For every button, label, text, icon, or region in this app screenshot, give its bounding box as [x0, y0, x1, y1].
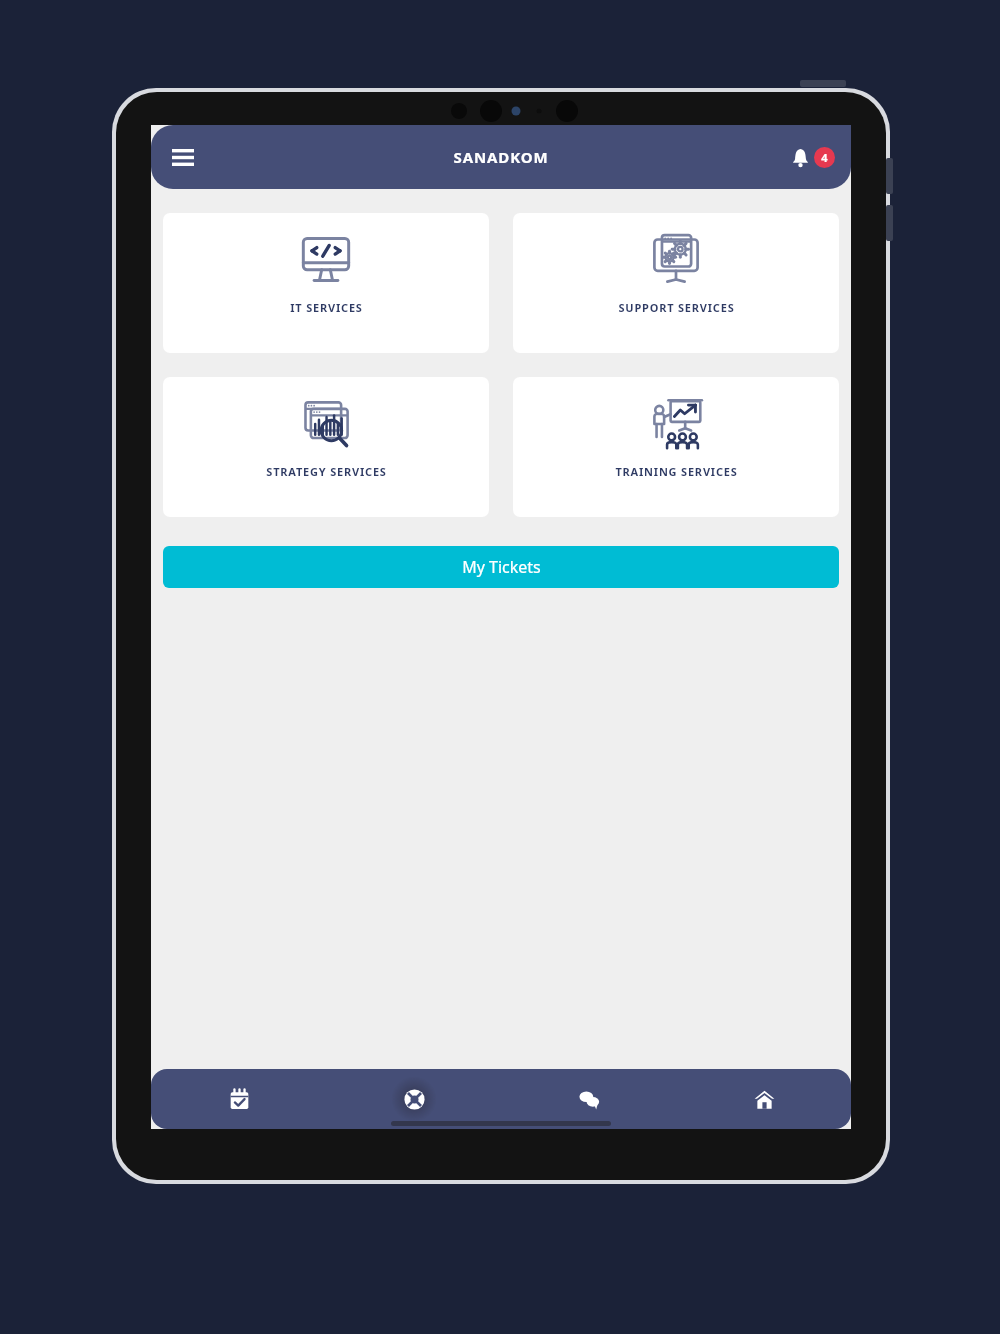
button[interactable]: Notifications	[788, 143, 839, 172]
button[interactable]: Support	[326, 1069, 501, 1129]
button[interactable]: Messages	[501, 1069, 676, 1129]
staticText: SANADKOM	[453, 147, 549, 167]
staticText: My Tickets	[462, 556, 541, 578]
button[interactable]: Menu	[159, 133, 207, 181]
staticText: STRATEGY SERVICES	[266, 464, 387, 479]
button[interactable]: STRATEGY SERVICES	[163, 377, 489, 517]
button[interactable]: My Tickets	[163, 546, 839, 588]
button[interactable]: SUPPORT SERVICES	[513, 213, 839, 353]
staticText: 4	[821, 150, 828, 165]
button[interactable]: TRAINING SERVICES	[513, 377, 839, 517]
button[interactable]: Home	[676, 1069, 851, 1129]
staticText: TRAINING SERVICES	[615, 464, 738, 479]
button[interactable]: IT SERVICES	[163, 213, 489, 353]
button[interactable]: Calendar	[151, 1069, 326, 1129]
staticText: IT SERVICES	[290, 300, 363, 315]
staticText: SUPPORT SERVICES	[618, 300, 735, 315]
